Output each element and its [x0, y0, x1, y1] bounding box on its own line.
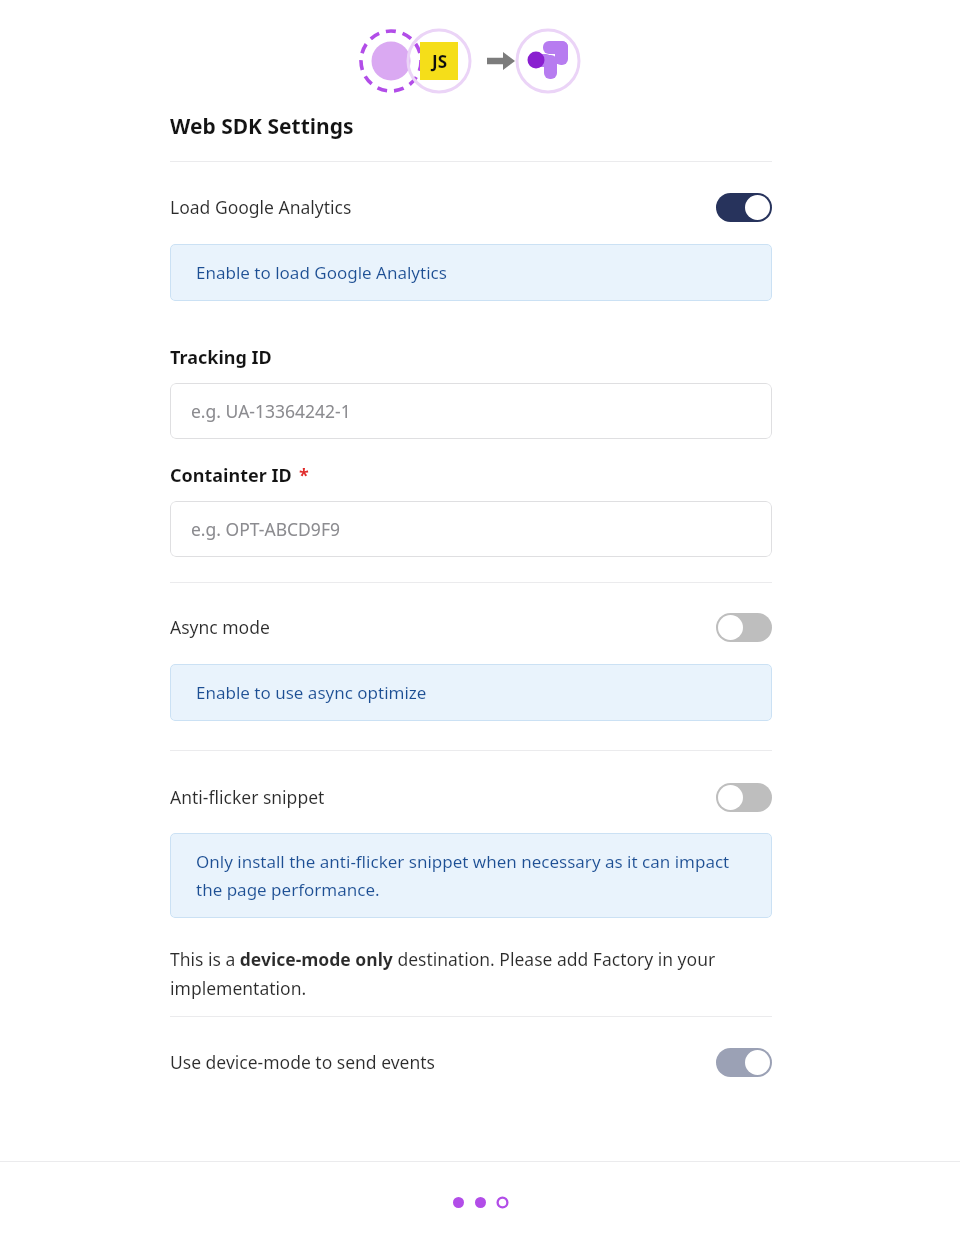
staticText: e.g. UA-13364242-1 [191, 399, 351, 423]
button[interactable]: Page indicator [452, 1196, 465, 1209]
staticText: Async mode [170, 615, 270, 639]
staticText: Load Google Analytics [170, 195, 352, 219]
button[interactable]: Page indicator [496, 1196, 509, 1209]
staticText: e.g. OPT-ABCD9F9 [191, 517, 340, 541]
staticText: Use device-mode to send events [170, 1050, 435, 1074]
staticText: Anti-flicker snippet [170, 785, 325, 809]
button[interactable]: Use device-mode to send events [170, 1045, 772, 1079]
button[interactable]: Anti-flicker snippet [716, 783, 772, 812]
staticText: Enable to use async optimize [196, 681, 427, 704]
button[interactable]: e.g. OPT-ABCD9F9 [170, 501, 772, 557]
button[interactable]: Async mode [716, 613, 772, 642]
button[interactable]: Page indicator [474, 1196, 487, 1209]
staticText: * [299, 463, 309, 488]
staticText: Only install the anti-flicker snippet wh… [196, 850, 752, 901]
button[interactable]: e.g. UA-13364242-1 [170, 383, 772, 439]
staticText: Tracking ID [170, 345, 272, 370]
staticText: Containter ID [170, 463, 292, 488]
button[interactable]: Async mode [170, 610, 772, 644]
staticText: Enable to load Google Analytics [196, 261, 447, 284]
staticText: Web SDK Settings [170, 112, 354, 141]
button[interactable]: Load Google Analytics [170, 190, 772, 224]
button[interactable]: Use device-mode to send events [716, 1048, 772, 1077]
staticText: JS [432, 50, 447, 73]
button[interactable]: Anti-flicker snippet [170, 780, 772, 814]
button[interactable]: Load Google Analytics [716, 193, 772, 222]
staticText: This is a device-mode only destination. … [170, 947, 772, 1000]
